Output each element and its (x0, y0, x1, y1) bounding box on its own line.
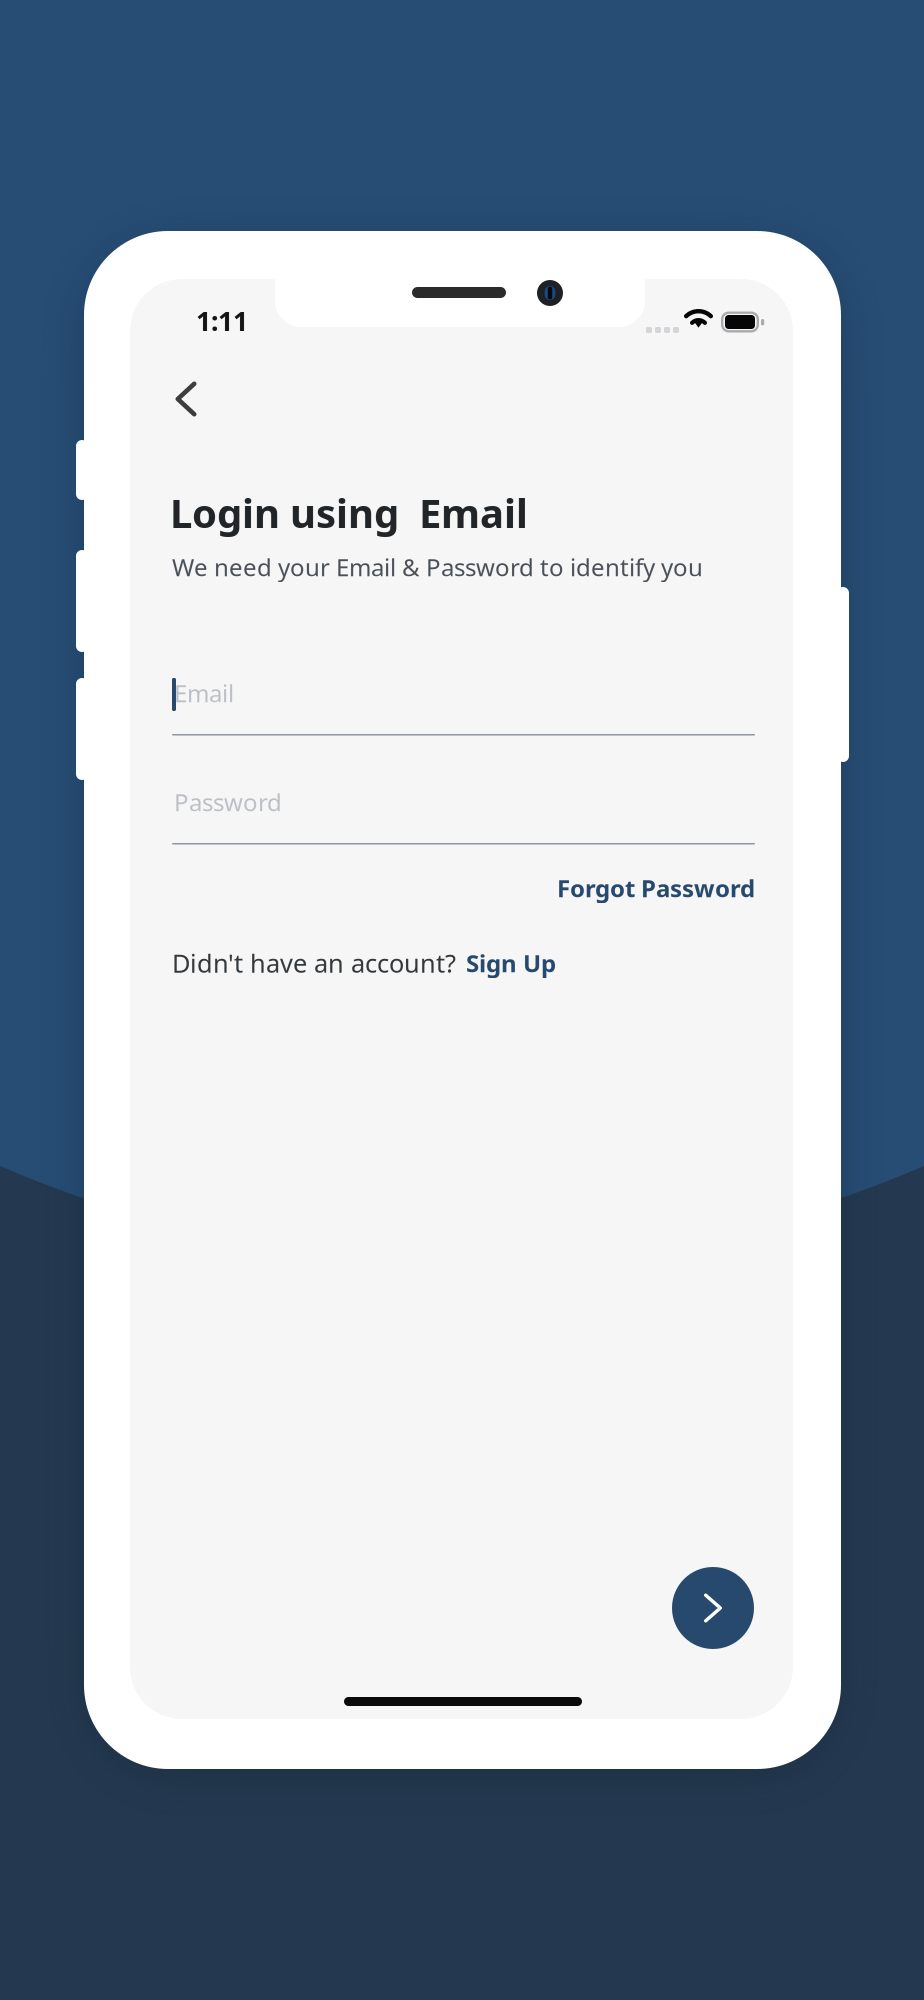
staticText: Password (174, 786, 282, 818)
button[interactable]: Continue (672, 1567, 754, 1649)
staticText: Login using Email (170, 486, 528, 539)
staticText: Sign Up (466, 947, 556, 979)
staticText: Didn't have an account? (172, 946, 456, 980)
staticText: Forgot Password (557, 872, 755, 904)
button[interactable]: Forgot Password (172, 868, 755, 908)
button[interactable]: Back (147, 361, 225, 437)
staticText: 1:11 (196, 303, 248, 338)
button[interactable]: Sign Up (456, 940, 560, 986)
staticText: We need your Email & Password to identif… (172, 551, 703, 583)
staticText: Email (174, 677, 234, 709)
